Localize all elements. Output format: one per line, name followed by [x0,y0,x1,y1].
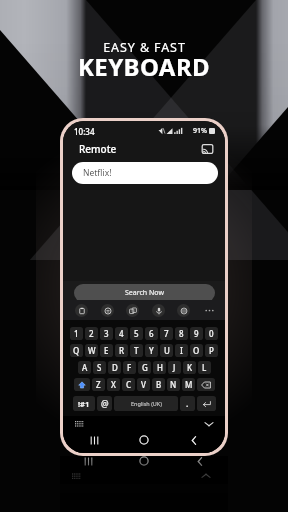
button[interactable]: English (UK) [114,396,178,411]
button[interactable]: K [183,361,196,374]
button[interactable]: Cast [200,142,214,156]
staticText: 91% [193,126,207,136]
button[interactable]: D [108,361,121,374]
button[interactable]: W [85,344,98,357]
staticText: U [164,345,170,356]
button[interactable]: Back [182,431,206,449]
staticText: !#1 [78,399,90,409]
button[interactable]: Shift [74,378,90,391]
staticText: 10:34 [74,126,95,137]
staticText: N [170,379,177,390]
staticText: 6 [149,328,154,339]
staticText: L [202,362,207,373]
staticText: 0 [209,328,214,339]
staticText: D [112,362,118,373]
staticText: English (UK) [131,400,162,407]
button[interactable]: O [190,344,203,357]
staticText: J [173,362,176,373]
staticText: E [104,345,109,356]
staticText: F [127,362,132,373]
staticText: 2 [89,328,94,339]
staticText: EASY & FAST [103,39,186,56]
button[interactable]: Q [70,344,83,357]
button[interactable]: X [107,378,120,391]
staticText: R [119,345,125,356]
staticText: 9 [194,328,199,339]
button[interactable]: R [115,344,128,357]
staticText: Z [96,379,101,390]
button[interactable]: Hide keyboard [202,419,216,429]
button[interactable]: 3 [100,327,113,340]
button[interactable]: F [123,361,136,374]
button[interactable]: Z [92,378,105,391]
staticText: 4 [119,328,124,339]
staticText: M [185,379,193,390]
staticText: A [82,362,88,373]
staticText: @ [101,398,109,410]
button[interactable]: Backspace [197,378,215,391]
staticText: Y [149,345,154,356]
button[interactable]: 2 [85,327,98,340]
button[interactable]: Voice input [152,304,165,317]
button[interactable]: More options [203,304,215,316]
button[interactable]: S [93,361,106,374]
staticText: B [156,379,162,390]
button[interactable]: Switch keyboard [73,420,85,429]
button[interactable]: !#1 [73,396,95,411]
staticText: Q [73,345,80,356]
staticText: V [141,379,146,390]
button[interactable]: 0 [205,327,218,340]
button[interactable]: B [152,378,165,391]
button[interactable]: Netflix! [72,162,218,184]
staticText: C [126,379,132,390]
button[interactable]: A [78,361,91,374]
button[interactable]: Enter [197,396,216,411]
button[interactable]: L [198,361,211,374]
staticText: S [97,362,102,373]
staticText: I [180,345,183,356]
button[interactable]: 4 [115,327,128,340]
button[interactable]: Search Now [74,284,215,302]
staticText: 7 [164,328,169,339]
button[interactable]: Recent apps [82,431,106,449]
button[interactable]: 7 [160,327,173,340]
button[interactable]: V [137,378,150,391]
staticText: 1 [74,328,79,339]
button[interactable]: J [168,361,181,374]
button[interactable]: . [180,396,195,411]
button[interactable]: U [160,344,173,357]
button[interactable]: 8 [175,327,188,340]
button[interactable]: @ [97,396,112,411]
staticText: . [186,398,189,410]
staticText: KEYBOARD [78,50,210,83]
button[interactable]: Clipboard [75,304,88,317]
button[interactable]: M [182,378,195,391]
button[interactable]: G [138,361,151,374]
staticText: Netflix! [83,167,112,179]
button[interactable]: Y [145,344,158,357]
staticText: X [111,379,116,390]
staticText: G [142,362,148,373]
button[interactable]: GIF [126,304,139,317]
button[interactable]: Home [132,431,156,449]
button[interactable]: 1 [70,327,83,340]
staticText: Search Now [125,288,164,298]
button[interactable]: E [100,344,113,357]
button[interactable]: N [167,378,180,391]
button[interactable]: 6 [145,327,158,340]
button[interactable]: H [153,361,166,374]
button[interactable]: 5 [130,327,143,340]
staticText: K [187,362,193,373]
staticText: W [88,345,96,356]
staticText: H [157,362,163,373]
button[interactable]: Settings [177,304,190,317]
staticText: 5 [134,328,139,339]
button[interactable]: P [205,344,218,357]
button[interactable]: 9 [190,327,203,340]
staticText: Remote [79,142,117,156]
button[interactable]: C [122,378,135,391]
button[interactable]: T [130,344,143,357]
staticText: P [209,345,214,356]
button[interactable]: Stickers [101,304,114,317]
button[interactable]: I [175,344,188,357]
